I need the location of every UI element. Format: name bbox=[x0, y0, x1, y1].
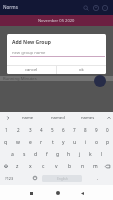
button[interactable]: m bbox=[89, 160, 102, 172]
button[interactable]: named bbox=[43, 112, 73, 124]
button[interactable]: g bbox=[52, 148, 63, 160]
staticText: o bbox=[95, 139, 99, 146]
staticText: h bbox=[67, 151, 71, 158]
button[interactable]: Home bbox=[52, 187, 64, 199]
button[interactable]: h bbox=[63, 148, 74, 160]
button[interactable]: p bbox=[102, 136, 113, 148]
button[interactable]: f bbox=[41, 148, 52, 160]
staticText: named bbox=[51, 115, 65, 121]
staticText: Add New Group bbox=[12, 39, 51, 46]
staticText: 9 bbox=[95, 127, 98, 133]
button[interactable]: y bbox=[58, 136, 69, 148]
button[interactable]: 7 bbox=[69, 124, 80, 136]
staticText: 0 bbox=[106, 127, 109, 133]
button[interactable]: Recent apps bbox=[25, 187, 37, 199]
button[interactable]: Back bbox=[76, 187, 88, 199]
staticText: r bbox=[40, 139, 43, 146]
button[interactable]: x bbox=[24, 160, 37, 172]
button[interactable]: 0 bbox=[102, 124, 113, 136]
staticText: q bbox=[4, 139, 8, 146]
staticText: k bbox=[89, 151, 92, 158]
staticText: Running Minutes bbox=[3, 76, 37, 81]
button[interactable]: ?123 bbox=[1, 172, 17, 184]
staticText: 6 bbox=[62, 127, 65, 133]
staticText: 5 bbox=[51, 127, 54, 133]
button[interactable]: . bbox=[90, 172, 106, 184]
button[interactable]: j bbox=[74, 148, 85, 160]
staticText: 1 bbox=[5, 127, 8, 133]
button[interactable]: Add group bbox=[94, 75, 106, 87]
button[interactable]: i bbox=[80, 136, 91, 148]
button[interactable]: k bbox=[85, 148, 96, 160]
staticText: y bbox=[62, 139, 65, 146]
button[interactable]: Emoji bbox=[30, 172, 39, 184]
button[interactable]: n bbox=[76, 160, 89, 172]
staticText: n bbox=[81, 163, 85, 170]
staticText: c bbox=[42, 163, 45, 170]
button[interactable]: s bbox=[18, 148, 30, 160]
button[interactable]: 3 bbox=[24, 124, 36, 136]
staticText: u bbox=[73, 139, 77, 146]
button[interactable]: e bbox=[24, 136, 36, 148]
staticText: f bbox=[46, 151, 48, 158]
button[interactable]: o bbox=[91, 136, 102, 148]
button[interactable]: More options bbox=[100, 3, 109, 12]
staticText: . bbox=[97, 175, 99, 182]
staticText: name bbox=[22, 115, 34, 121]
staticText: g bbox=[56, 151, 60, 158]
button[interactable]: 9 bbox=[91, 124, 102, 136]
button[interactable]: d bbox=[30, 148, 41, 160]
button[interactable]: b bbox=[63, 160, 76, 172]
staticText: m bbox=[93, 163, 98, 170]
button[interactable]: c bbox=[37, 160, 50, 172]
button[interactable]: 8 bbox=[80, 124, 91, 136]
staticText: 4 bbox=[40, 127, 43, 133]
button[interactable]: w bbox=[12, 136, 24, 148]
staticText: 7 bbox=[73, 127, 76, 133]
staticText: English bbox=[57, 177, 68, 181]
button[interactable]: names bbox=[73, 112, 103, 124]
staticText: v bbox=[55, 163, 58, 170]
button[interactable]: More suggestions bbox=[104, 112, 113, 124]
staticText: Norms bbox=[3, 4, 18, 10]
staticText: d bbox=[34, 151, 38, 158]
staticText: 8 bbox=[84, 127, 87, 133]
staticText: cancel bbox=[25, 67, 38, 73]
button[interactable]: 2 bbox=[12, 124, 24, 136]
staticText: 2 bbox=[17, 127, 20, 133]
staticText: p bbox=[106, 139, 110, 146]
button[interactable]: 6 bbox=[58, 124, 69, 136]
button[interactable]: Account bbox=[91, 3, 100, 12]
button[interactable]: Search bbox=[81, 3, 90, 12]
button[interactable]: q bbox=[0, 136, 12, 148]
button[interactable]: Backspace bbox=[102, 160, 113, 172]
staticText: t bbox=[52, 139, 54, 146]
button[interactable]: 5 bbox=[47, 124, 58, 136]
button[interactable]: 1 bbox=[0, 124, 12, 136]
staticText: ?123 bbox=[5, 176, 14, 181]
staticText: November 05 2020 bbox=[38, 18, 75, 24]
button[interactable]: v bbox=[50, 160, 63, 172]
button[interactable]: z bbox=[11, 160, 24, 172]
staticText: x bbox=[29, 163, 32, 170]
staticText: names bbox=[81, 115, 95, 121]
staticText: new group name bbox=[12, 50, 46, 56]
staticText: a bbox=[11, 151, 14, 158]
button[interactable]: Space bbox=[42, 175, 82, 182]
button[interactable]: 4 bbox=[36, 124, 47, 136]
button[interactable]: ok bbox=[57, 66, 106, 74]
staticText: e bbox=[29, 139, 32, 146]
button[interactable]: l bbox=[96, 148, 107, 160]
button[interactable]: Previous suggestions bbox=[3, 112, 12, 124]
button[interactable]: Running Minutes bbox=[0, 76, 113, 81]
button[interactable]: r bbox=[36, 136, 47, 148]
staticText: b bbox=[68, 163, 72, 170]
button[interactable]: Shift bbox=[0, 160, 11, 172]
button[interactable]: u bbox=[69, 136, 80, 148]
staticText: s bbox=[23, 151, 26, 158]
button[interactable]: cancel bbox=[7, 66, 56, 74]
button[interactable]: a bbox=[6, 148, 18, 160]
button[interactable]: t bbox=[47, 136, 58, 148]
button[interactable]: name bbox=[13, 112, 43, 124]
staticText: j bbox=[79, 151, 81, 158]
